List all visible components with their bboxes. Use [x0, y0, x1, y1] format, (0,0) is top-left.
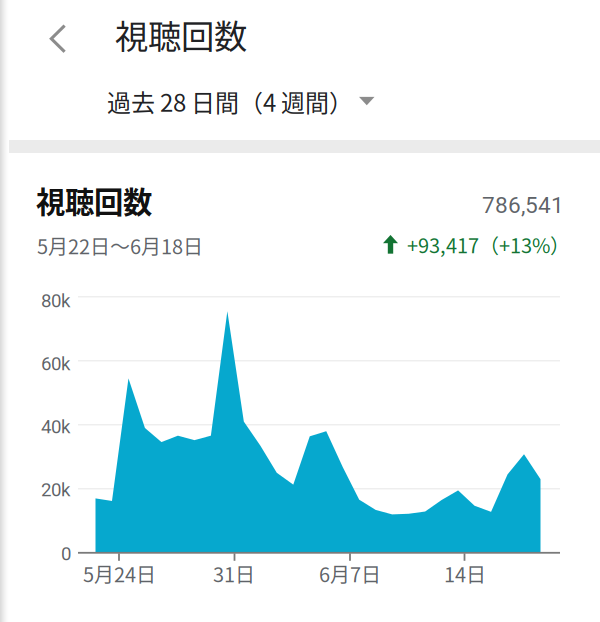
staticText: 60k [41, 353, 70, 375]
button[interactable]: Back [35, 20, 79, 58]
staticText: 80k [41, 290, 70, 312]
staticText: 31日 [213, 559, 255, 588]
staticText: 5月24日 [83, 559, 156, 588]
staticText: 視聴回数 [115, 10, 247, 58]
staticText: 40k [41, 416, 70, 438]
staticText: 786,541 [482, 192, 564, 219]
staticText: 14日 [444, 559, 486, 588]
staticText: +93,417（+13%） [407, 230, 570, 259]
staticText: 過去 28 日間（4 週間） [107, 84, 353, 119]
staticText: 視聴回数 [36, 179, 152, 221]
staticText: 6月7日 [319, 559, 381, 588]
staticText: 5月22日〜6月18日 [37, 231, 203, 260]
button[interactable]: 過去 28 日間（4 週間） [107, 84, 375, 119]
staticText: 0 [61, 543, 71, 565]
staticText: 20k [41, 479, 70, 501]
